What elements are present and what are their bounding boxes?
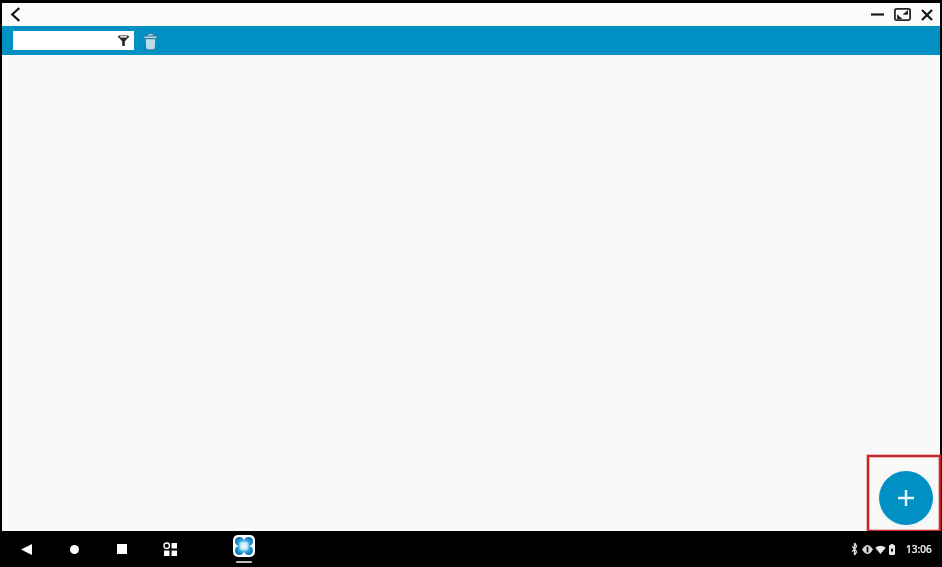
button[interactable]: Maximize [889,3,915,26]
button[interactable]: Home [60,535,88,563]
button[interactable] [13,31,134,50]
button[interactable]: Add [879,471,933,525]
button[interactable]: Close [915,3,939,26]
button[interactable]: Back [3,3,27,26]
button[interactable]: Apps [156,535,184,563]
staticText: 13:06 [906,542,932,556]
button[interactable]: Back [12,535,40,563]
button[interactable]: Recents [108,535,136,563]
button[interactable]: Running app [232,531,255,567]
button[interactable]: Minimize [865,3,889,26]
button[interactable]: Delete [138,28,162,54]
